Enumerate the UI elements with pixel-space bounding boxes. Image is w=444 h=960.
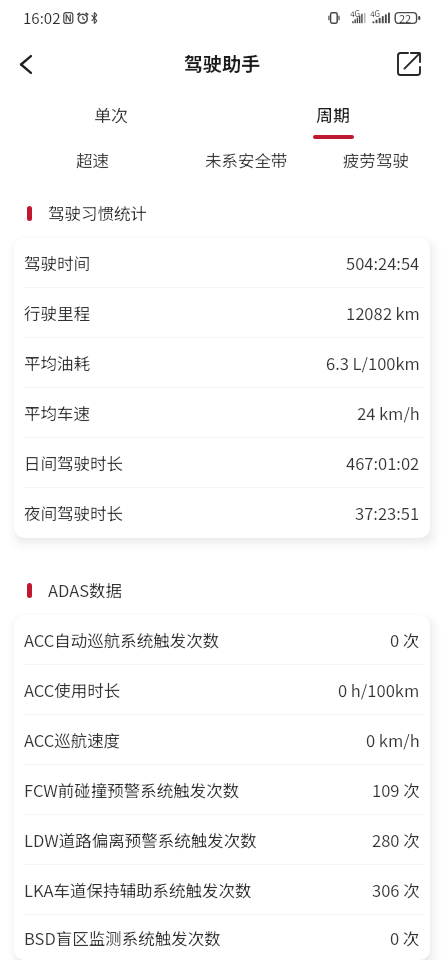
staticText: 504:24:54 — [346, 251, 420, 275]
button[interactable]: 单次 — [0, 92, 222, 142]
staticText: ADAS数据 — [48, 578, 123, 602]
button[interactable]: 平均油耗 — [14, 338, 430, 388]
staticText: 驾驶习惯统计 — [48, 201, 147, 225]
staticText: ACC自动巡航系统触发次数 — [24, 628, 220, 652]
button[interactable]: 未系安全带 — [189, 140, 303, 179]
button[interactable]: LKA车道保持辅助系统触发次数 — [14, 865, 430, 915]
button[interactable]: 疲劳驾驶 — [328, 140, 424, 179]
staticText: 0 km/h — [366, 728, 420, 752]
staticText: 109 次 — [372, 778, 420, 802]
staticText: 驾驶助手 — [184, 49, 261, 77]
staticText: 16:02 — [23, 7, 61, 29]
staticText: ACC巡航速度 — [24, 728, 121, 752]
staticText: 22 — [399, 10, 412, 26]
staticText: 12082 km — [346, 301, 420, 325]
staticText: 4G — [370, 8, 380, 20]
staticText: 周期 — [316, 102, 350, 127]
staticText: 行驶里程 — [24, 301, 90, 325]
staticText: 夜间驾驶时长 — [24, 501, 123, 525]
staticText: 0 h/100km — [338, 678, 420, 702]
button[interactable]: 平均车速 — [14, 388, 430, 438]
staticText: 280 次 — [372, 828, 420, 852]
staticText: 平均油耗 — [24, 351, 90, 375]
staticText: 驾驶时间 — [24, 251, 90, 275]
button[interactable]: Back — [2, 40, 50, 88]
staticText: 24 km/h — [357, 401, 420, 425]
button[interactable]: LDW道路偏离预警系统触发次数 — [14, 815, 430, 865]
button[interactable]: 周期 — [222, 92, 444, 142]
staticText: 306 次 — [372, 878, 420, 902]
staticText: 日间驾驶时长 — [24, 451, 123, 475]
staticText: 37:23:51 — [355, 501, 420, 525]
staticText: 0 次 — [390, 926, 420, 950]
staticText: 467:01:02 — [346, 451, 420, 475]
staticText: 0 次 — [390, 628, 420, 652]
button[interactable]: 夜间驾驶时长 — [14, 488, 430, 538]
staticText: 6.3 L/100km — [326, 351, 420, 375]
button[interactable]: 超速 — [62, 140, 122, 179]
staticText: 未系安全带 — [205, 148, 288, 172]
staticText: 超速 — [76, 148, 109, 172]
button[interactable]: 日间驾驶时长 — [14, 438, 430, 488]
button[interactable]: ACC使用时长 — [14, 665, 430, 715]
button[interactable]: BSD盲区监测系统触发次数 — [14, 915, 430, 960]
button[interactable]: FCW前碰撞预警系统触发次数 — [14, 765, 430, 815]
staticText: 4G — [350, 8, 360, 20]
button[interactable]: 行驶里程 — [14, 288, 430, 338]
staticText: FCW前碰撞预警系统触发次数 — [24, 778, 240, 802]
staticText: LDW道路偏离预警系统触发次数 — [24, 828, 257, 852]
staticText: 单次 — [94, 102, 128, 127]
staticText: BSD盲区监测系统触发次数 — [24, 926, 221, 950]
button[interactable]: 驾驶时间 — [14, 238, 430, 288]
button[interactable]: ACC巡航速度 — [14, 715, 430, 765]
staticText: 疲劳驾驶 — [343, 148, 409, 172]
staticText: 平均车速 — [24, 401, 90, 425]
staticText: ACC使用时长 — [24, 678, 121, 702]
button[interactable]: ACC自动巡航系统触发次数 — [14, 615, 430, 665]
staticText: LKA车道保持辅助系统触发次数 — [24, 878, 252, 902]
button[interactable]: Open in new window — [385, 40, 433, 88]
